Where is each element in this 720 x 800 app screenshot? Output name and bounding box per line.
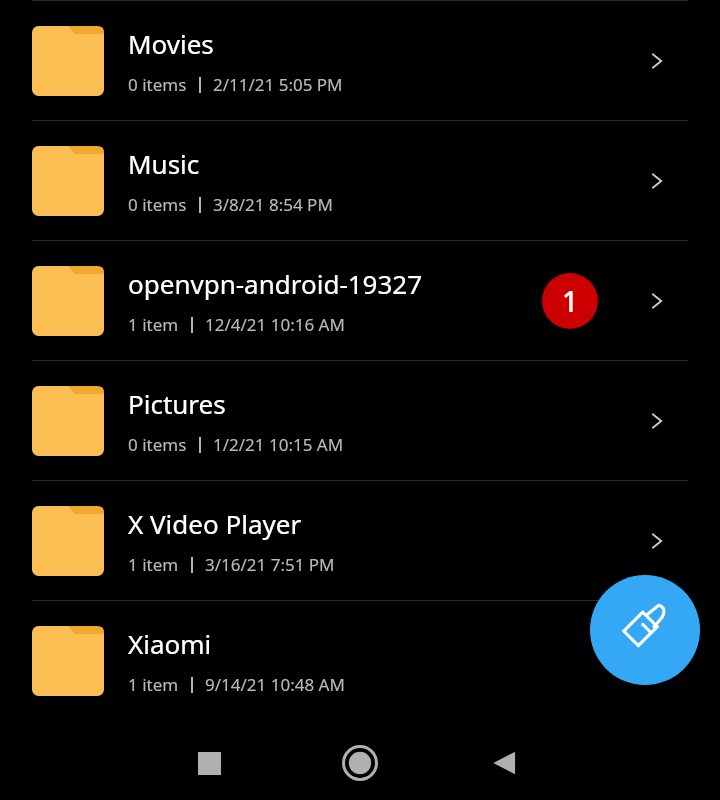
staticText: X Video Player: [128, 506, 302, 541]
staticText: openvpn-android-19327: [128, 266, 423, 301]
button[interactable]: Home: [329, 732, 391, 794]
staticText: 1 item: [128, 553, 179, 576]
button[interactable]: X Video Player: [0, 482, 720, 600]
button[interactable]: Clean: [590, 575, 700, 685]
staticText: 1/2/21 10:15 AM: [213, 433, 344, 456]
staticText: Pictures: [128, 386, 226, 421]
button[interactable]: Back: [474, 732, 536, 794]
button[interactable]: Recents: [178, 732, 240, 794]
button[interactable]: Movies: [0, 2, 720, 120]
staticText: 1: [562, 282, 579, 320]
button[interactable]: Xiaomi: [0, 602, 720, 720]
button[interactable]: Music: [0, 122, 720, 240]
staticText: 2/11/21 5:05 PM: [213, 73, 343, 96]
staticText: 9/14/21 10:48 AM: [205, 673, 345, 696]
staticText: 0 items: [128, 193, 187, 216]
staticText: 0 items: [128, 433, 187, 456]
staticText: 0 items: [128, 73, 187, 96]
button[interactable]: openvpn-android-19327: [0, 242, 720, 360]
staticText: Xiaomi: [128, 626, 212, 661]
staticText: Music: [128, 146, 200, 181]
staticText: 1 item: [128, 313, 179, 336]
staticText: 12/4/21 10:16 AM: [205, 313, 345, 336]
staticText: Movies: [128, 26, 214, 61]
staticText: 1 item: [128, 673, 179, 696]
staticText: 3/8/21 8:54 PM: [213, 193, 333, 216]
button[interactable]: Pictures: [0, 362, 720, 480]
staticText: 3/16/21 7:51 PM: [205, 553, 335, 576]
